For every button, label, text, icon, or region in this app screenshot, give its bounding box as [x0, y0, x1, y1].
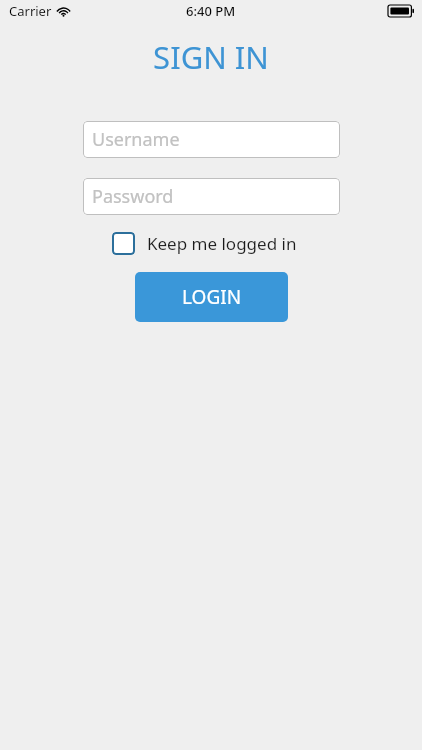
staticText: LOGIN	[182, 284, 242, 310]
staticText: Username	[92, 127, 180, 152]
staticText: Carrier	[9, 2, 52, 20]
staticText: SIGN IN	[153, 36, 269, 78]
button[interactable]: Username	[83, 121, 340, 158]
staticText: Password	[92, 184, 174, 209]
button[interactable]: Password	[83, 178, 340, 215]
button[interactable]: LOGIN	[135, 272, 288, 322]
staticText: 6:40 PM	[186, 2, 236, 20]
button[interactable]: Keep me logged in	[83, 228, 340, 258]
staticText: Keep me logged in	[147, 232, 297, 255]
